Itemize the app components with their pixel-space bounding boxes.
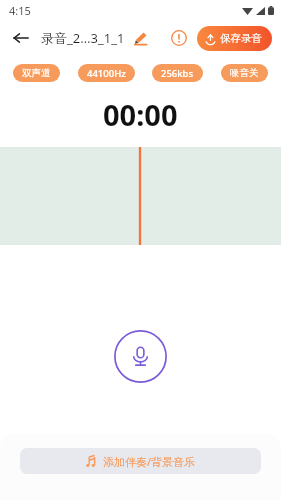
button[interactable]: Back (7, 24, 35, 52)
staticText: 添加伴奏/背景音乐 (103, 454, 196, 469)
button[interactable]: 256kbs (152, 64, 203, 82)
button[interactable]: 添加伴奏/背景音乐 (20, 448, 261, 474)
staticText: 256kbs (161, 67, 194, 80)
button[interactable]: Info (166, 25, 192, 51)
staticText: 保存录音 (220, 32, 262, 45)
button[interactable]: Record (114, 330, 167, 383)
staticText: 录音_2…3_1_1 (41, 29, 125, 47)
button[interactable]: 双声道 (13, 64, 60, 82)
staticText: 44100Hz (87, 67, 126, 80)
button[interactable]: 噪音关 (221, 64, 268, 82)
staticText: 00:00 (103, 95, 178, 134)
button[interactable]: 保存录音 (197, 26, 272, 51)
staticText: 4:15 (9, 3, 31, 18)
staticText: 双声道 (22, 67, 51, 79)
button[interactable]: Rename (130, 28, 150, 48)
staticText: 噪音关 (230, 67, 259, 79)
button[interactable]: Waveform (0, 147, 281, 245)
button[interactable]: 44100Hz (78, 64, 135, 82)
